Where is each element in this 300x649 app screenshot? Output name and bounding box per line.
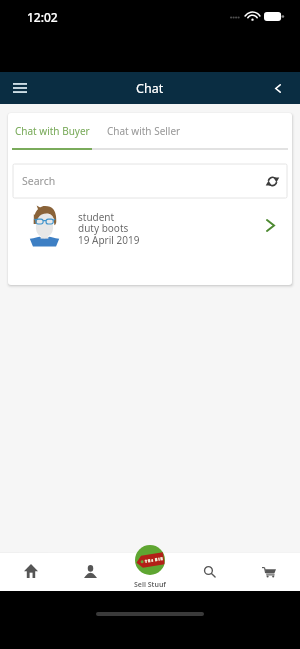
button[interactable]: Refresh bbox=[257, 164, 287, 198]
staticText: 12:02 bbox=[27, 9, 58, 25]
button[interactable]: Sell Stuuf bbox=[123, 543, 177, 589]
staticText: Chat with Seller bbox=[107, 124, 181, 138]
button[interactable]: Chat with Buyer bbox=[12, 113, 92, 150]
button[interactable]: Search bbox=[13, 164, 287, 198]
button[interactable]: Home bbox=[0, 553, 60, 591]
button[interactable]: Back bbox=[260, 72, 300, 104]
button[interactable]: Profile bbox=[60, 553, 120, 591]
button[interactable]: student duty boots 19 April 2019 bbox=[8, 199, 292, 253]
staticText: Sell Stuuf bbox=[134, 580, 166, 589]
button[interactable]: Chat with Seller bbox=[98, 113, 190, 150]
staticText: Search bbox=[22, 174, 56, 188]
button[interactable]: Cart bbox=[240, 553, 300, 591]
staticText: Chat with Buyer bbox=[15, 124, 90, 138]
staticText: Chat bbox=[136, 80, 164, 97]
button[interactable]: Open navigation menu bbox=[0, 72, 40, 104]
button[interactable]: Search bbox=[180, 553, 240, 591]
staticText: student duty boots 19 April 2019 bbox=[78, 210, 140, 247]
